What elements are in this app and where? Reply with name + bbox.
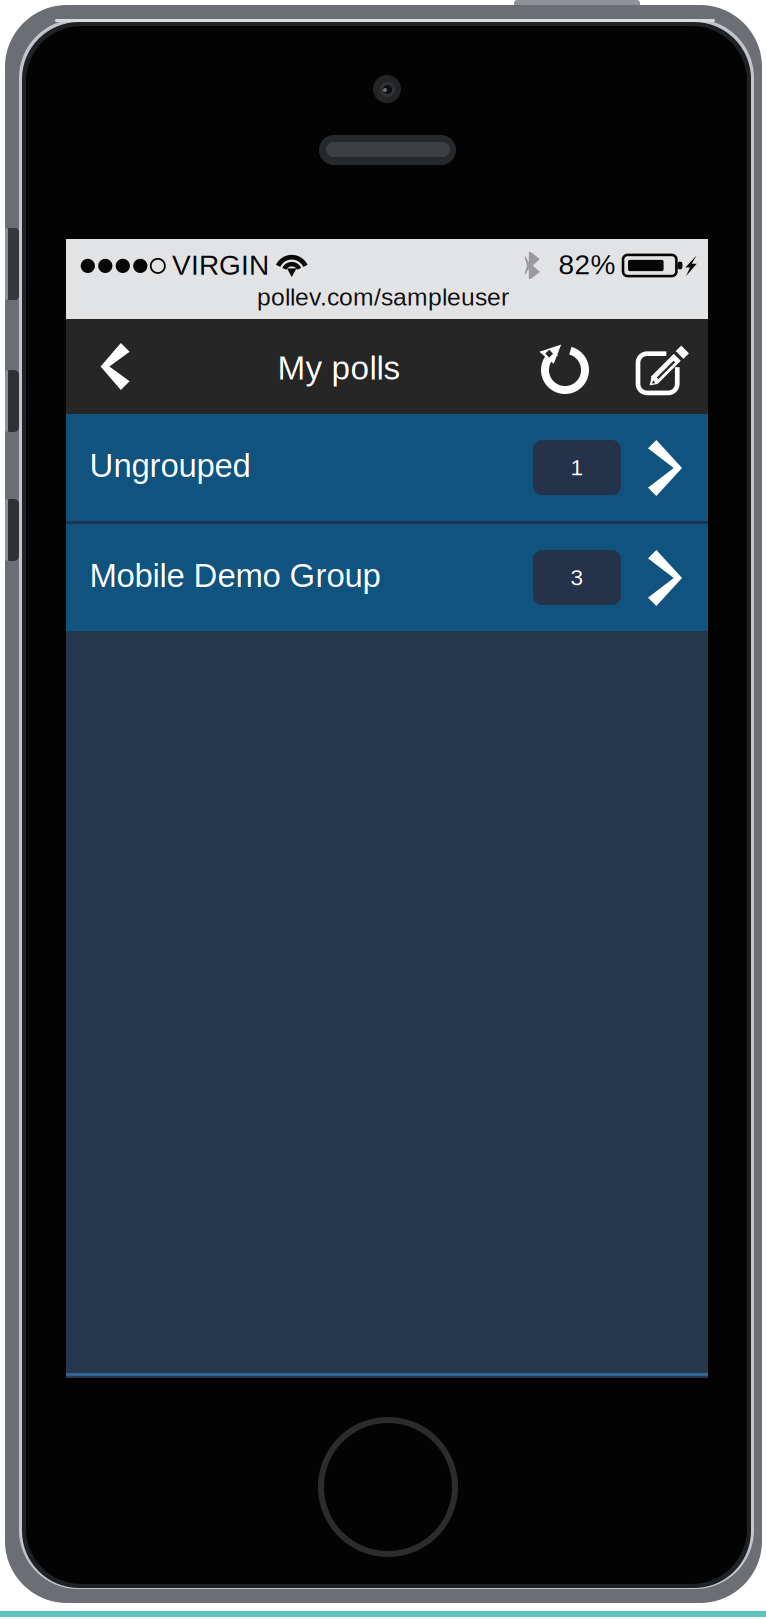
- button[interactable]: Compose: [618, 319, 704, 414]
- staticText: 3: [570, 565, 583, 590]
- staticText: 1: [570, 455, 583, 480]
- staticText: Mobile Demo Group: [89, 557, 380, 594]
- staticText: pollev.com/sampleuser: [257, 283, 509, 311]
- button[interactable]: Ungrouped: [66, 414, 708, 521]
- button[interactable]: Back: [66, 319, 152, 414]
- staticText: Ungrouped: [89, 447, 250, 484]
- button[interactable]: Refresh: [520, 319, 606, 414]
- button[interactable]: Mobile Demo Group: [66, 524, 708, 631]
- staticText: My polls: [277, 349, 400, 387]
- staticText: 82%: [558, 249, 615, 280]
- staticText: VIRGIN: [172, 249, 269, 281]
